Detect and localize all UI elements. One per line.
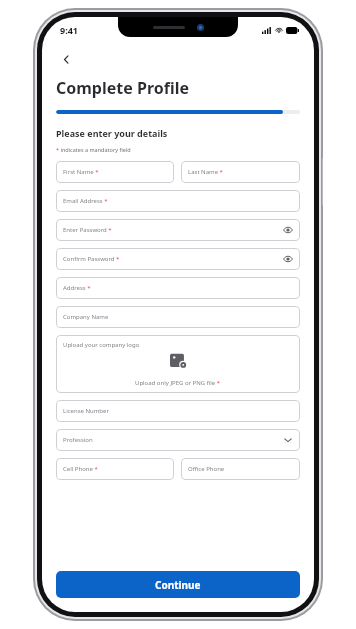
button[interactable]: Back [56, 49, 76, 69]
staticText: Email Address * [63, 197, 108, 205]
staticText: Cell Phone * [63, 465, 98, 473]
button[interactable]: Confirm Password * [56, 248, 300, 270]
button[interactable]: Office Phone [181, 458, 300, 480]
button[interactable]: Profession [56, 429, 300, 451]
button[interactable]: Continue [56, 571, 300, 598]
staticText: Address * [63, 284, 91, 292]
button[interactable]: Last Name * [181, 161, 300, 183]
staticText: 9:41 [60, 24, 78, 36]
staticText: Profession [63, 436, 93, 444]
staticText: * indicates a mandatory field [56, 146, 131, 153]
staticText: Complete Profile [56, 77, 190, 99]
button[interactable]: Company Name [56, 306, 300, 328]
button[interactable]: License Number [56, 400, 300, 422]
button[interactable]: Cell Phone * [56, 458, 174, 480]
other: Open dropdown [283, 435, 293, 445]
staticText: Upload only JPEG or PNG file * [135, 379, 221, 387]
button[interactable]: Upload your company logo [56, 335, 300, 393]
staticText: Office Phone [188, 465, 225, 473]
staticText: First Name * [63, 168, 99, 176]
staticText: Confirm Password * [63, 255, 120, 263]
staticText: Company Name [63, 313, 109, 321]
button[interactable]: Email Address * [56, 190, 300, 212]
staticText: Enter Password * [63, 226, 112, 234]
other: Show password [283, 225, 293, 235]
staticText: Last Name * [188, 168, 223, 176]
staticText: Upload your company logo [63, 341, 140, 349]
staticText: License Number [63, 407, 109, 415]
staticText: Continue [155, 578, 201, 592]
button[interactable]: Enter Password * [56, 219, 300, 241]
other: Show password [283, 254, 293, 264]
button[interactable]: First Name * [56, 161, 174, 183]
staticText: Please enter your details [56, 127, 168, 139]
button[interactable]: Address * [56, 277, 300, 299]
